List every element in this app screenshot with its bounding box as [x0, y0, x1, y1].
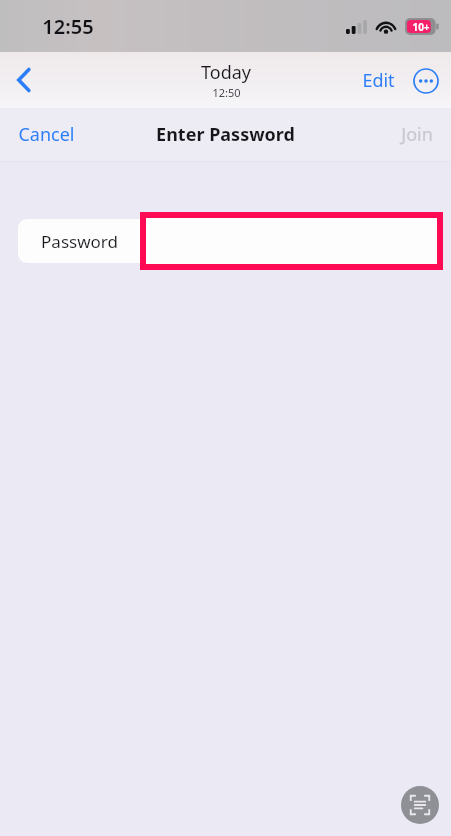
button[interactable]: Cancel: [0, 114, 93, 155]
staticText: Edit: [362, 68, 395, 93]
button[interactable]: Edit: [356, 62, 401, 99]
staticText: Join: [401, 122, 433, 147]
staticText: 12:55: [42, 13, 94, 40]
button[interactable]: Back: [0, 57, 46, 103]
staticText: 12:50: [212, 85, 241, 100]
staticText: Cancel: [18, 122, 75, 147]
button[interactable]: Join: [383, 114, 451, 155]
staticText: Today: [201, 60, 251, 85]
button[interactable]: Hide keyboard: [401, 786, 439, 824]
staticText: 10+: [412, 20, 430, 34]
staticText: Enter Password: [156, 122, 295, 147]
staticText: Password: [41, 230, 118, 253]
button[interactable]: Password input field: [140, 212, 443, 270]
button[interactable]: More options: [411, 66, 441, 96]
